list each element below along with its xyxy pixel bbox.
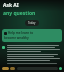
staticText: Today [28,21,36,25]
other: AI assistant [2,46,5,49]
staticText: Ask AI [3,2,19,9]
staticText: any question [3,10,36,17]
button[interactable]: Suggestion [2,67,9,70]
staticText: Help me learn to [8,31,34,35]
button[interactable]: Suggestion [10,67,15,70]
staticText: become wealthy [4,36,29,40]
button[interactable]: Today [25,20,39,26]
button[interactable]: Help me learn to [2,29,62,42]
button[interactable]: Send [59,67,62,70]
